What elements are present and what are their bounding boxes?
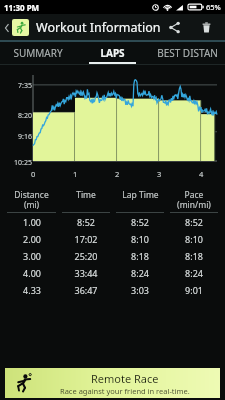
- button[interactable]: 4.00: [4, 264, 221, 281]
- staticText: Remote Race: [91, 371, 159, 386]
- staticText: 4.33: [23, 284, 41, 296]
- staticText: 17:02: [74, 233, 98, 245]
- button[interactable]: Back: [3, 19, 30, 36]
- staticText: 8:10: [131, 233, 149, 245]
- staticText: 8:52: [131, 216, 149, 228]
- staticText: 11:30 PM: [4, 2, 40, 13]
- staticText: Time: [76, 189, 96, 201]
- button[interactable]: 3.00: [4, 247, 221, 264]
- staticText: 4.00: [23, 267, 41, 279]
- staticText: 8:24: [131, 267, 149, 279]
- staticText: Workout Information: [36, 19, 161, 36]
- staticText: 8:52: [77, 216, 95, 228]
- button[interactable]: 4.33: [4, 281, 221, 298]
- staticText: 8:18: [185, 250, 203, 262]
- staticText: LAPS: [100, 46, 125, 60]
- staticText: 9:16: [18, 132, 32, 142]
- staticText: 0: [31, 169, 36, 179]
- staticText: 2: [115, 169, 120, 179]
- staticText: 1.00: [23, 216, 41, 228]
- staticText: Pace (min/mi): [177, 189, 211, 210]
- button[interactable]: Delete: [195, 16, 217, 38]
- staticText: 7:35: [18, 81, 32, 91]
- button[interactable]: Share: [163, 16, 185, 38]
- staticText: 3.00: [23, 250, 41, 262]
- staticText: 8:20: [18, 111, 32, 121]
- staticText: Race against your friend in real-time.: [60, 386, 190, 396]
- staticText: 10:25: [14, 158, 32, 168]
- button[interactable]: SUMMARY: [0, 42, 75, 64]
- staticText: 1: [73, 169, 78, 179]
- staticText: Lap Time: [122, 189, 159, 201]
- staticText: Distance (mi): [14, 189, 49, 210]
- staticText: 33:44: [74, 267, 98, 279]
- staticText: 65%: [206, 2, 221, 12]
- staticText: 25:20: [74, 250, 98, 262]
- button[interactable]: Remote Race: [5, 368, 220, 398]
- staticText: 8:18: [131, 250, 149, 262]
- staticText: 9:01: [185, 284, 203, 296]
- staticText: 8:10: [185, 233, 203, 245]
- staticText: 3: [157, 169, 162, 179]
- staticText: SUMMARY: [13, 46, 63, 60]
- staticText: 8:24: [185, 267, 203, 279]
- staticText: 36:47: [74, 284, 98, 296]
- button[interactable]: LAPS: [75, 42, 150, 64]
- staticText: 3:03: [131, 284, 149, 296]
- button[interactable]: 2.00: [4, 230, 221, 247]
- staticText: 4: [199, 169, 204, 179]
- button[interactable]: 1.00: [4, 213, 221, 230]
- staticText: 8:52: [185, 216, 203, 228]
- staticText: BEST DISTAN: [157, 46, 218, 60]
- button[interactable]: BEST DISTAN: [150, 42, 225, 64]
- staticText: 2.00: [23, 233, 41, 245]
